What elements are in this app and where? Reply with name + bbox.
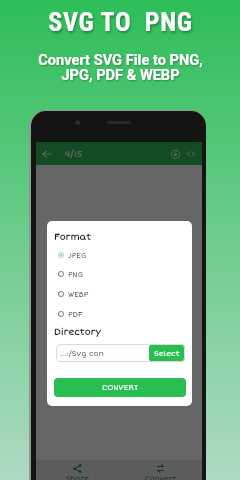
staticText: CONVERT <box>102 383 139 392</box>
button[interactable]: Source code <box>183 146 199 162</box>
button[interactable]: Back <box>40 147 54 161</box>
button[interactable]: Select <box>149 344 185 362</box>
staticText: SVG TO PNG <box>48 7 193 37</box>
staticText: Share <box>66 474 89 480</box>
staticText: Convert SVG File to PNG, JPG, PDF & WEBP <box>38 51 203 84</box>
button[interactable]: About <box>167 146 183 162</box>
button[interactable]: Share <box>36 464 119 480</box>
button[interactable]: CONVERT <box>54 378 186 397</box>
button[interactable]: PNG <box>54 264 185 284</box>
staticText: PNG <box>68 270 83 279</box>
staticText: Convert <box>145 474 177 480</box>
staticText: Select <box>154 349 180 358</box>
staticText: JPEG <box>68 251 87 260</box>
button[interactable]: PDF <box>54 304 185 324</box>
staticText: WEBP <box>68 290 89 299</box>
staticText: 4/15 <box>65 149 83 159</box>
button[interactable]: JPEG <box>54 245 185 265</box>
staticText: ...:/Svg con <box>60 349 149 358</box>
staticText: Format <box>54 232 91 243</box>
staticText: PDF <box>68 310 83 319</box>
staticText: Directory <box>54 327 101 338</box>
button[interactable]: WEBP <box>54 284 185 304</box>
button[interactable]: Convert <box>119 464 202 480</box>
